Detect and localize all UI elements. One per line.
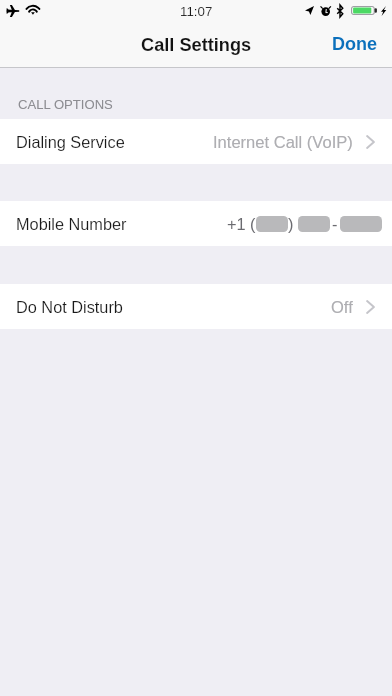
staticText: Internet Call (VoIP) [213,133,353,151]
staticText: Mobile Number [16,215,127,233]
staticText: Call Settings [141,35,252,55]
button[interactable]: Mobile Number [0,201,392,246]
staticText: +1 ( [227,215,256,233]
staticText: Do Not Disturb [16,298,123,316]
staticText: 11:07 [180,4,213,19]
other: More [366,135,375,149]
staticText: Done [332,34,377,54]
staticText: Off [331,298,353,316]
staticText: ) [288,215,294,233]
button[interactable]: Done [318,22,392,66]
staticText: CALL OPTIONS [18,97,113,112]
button[interactable]: Dialing Service [0,119,392,164]
button[interactable]: Do Not Disturb [0,284,392,329]
staticText: Dialing Service [16,133,125,151]
other: More [366,300,375,314]
staticText: - [332,215,338,233]
